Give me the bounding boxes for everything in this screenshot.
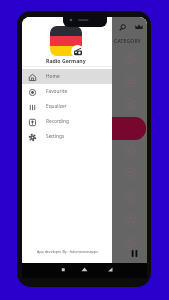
button[interactable]: Favourite [22,84,112,99]
button[interactable]: Equalizer [22,99,112,114]
button[interactable]: Recording [22,114,112,129]
staticText: Favourite [46,88,68,95]
button[interactable]: Home [22,69,112,84]
button[interactable] [112,232,147,252]
button[interactable] [112,209,147,229]
button[interactable]: Premium [133,21,145,33]
button[interactable] [112,186,147,206]
staticText: App developer By : falconvisionapps [37,249,98,254]
staticText: CATEGORY [114,38,141,45]
button[interactable] [112,71,147,91]
button[interactable] [112,140,147,160]
button[interactable] [112,163,147,183]
button[interactable] [112,94,147,114]
button[interactable]: Settings [22,129,112,144]
staticText: Recording [46,118,69,125]
staticText: Settings [46,133,65,140]
button[interactable] [112,48,147,68]
button[interactable]: Search [116,21,128,33]
staticText: Equalizer [46,103,67,110]
button[interactable]: Pause [128,247,140,259]
staticText: Radio Germany [46,57,86,64]
staticText: Home [46,73,60,80]
button[interactable] [112,117,146,140]
